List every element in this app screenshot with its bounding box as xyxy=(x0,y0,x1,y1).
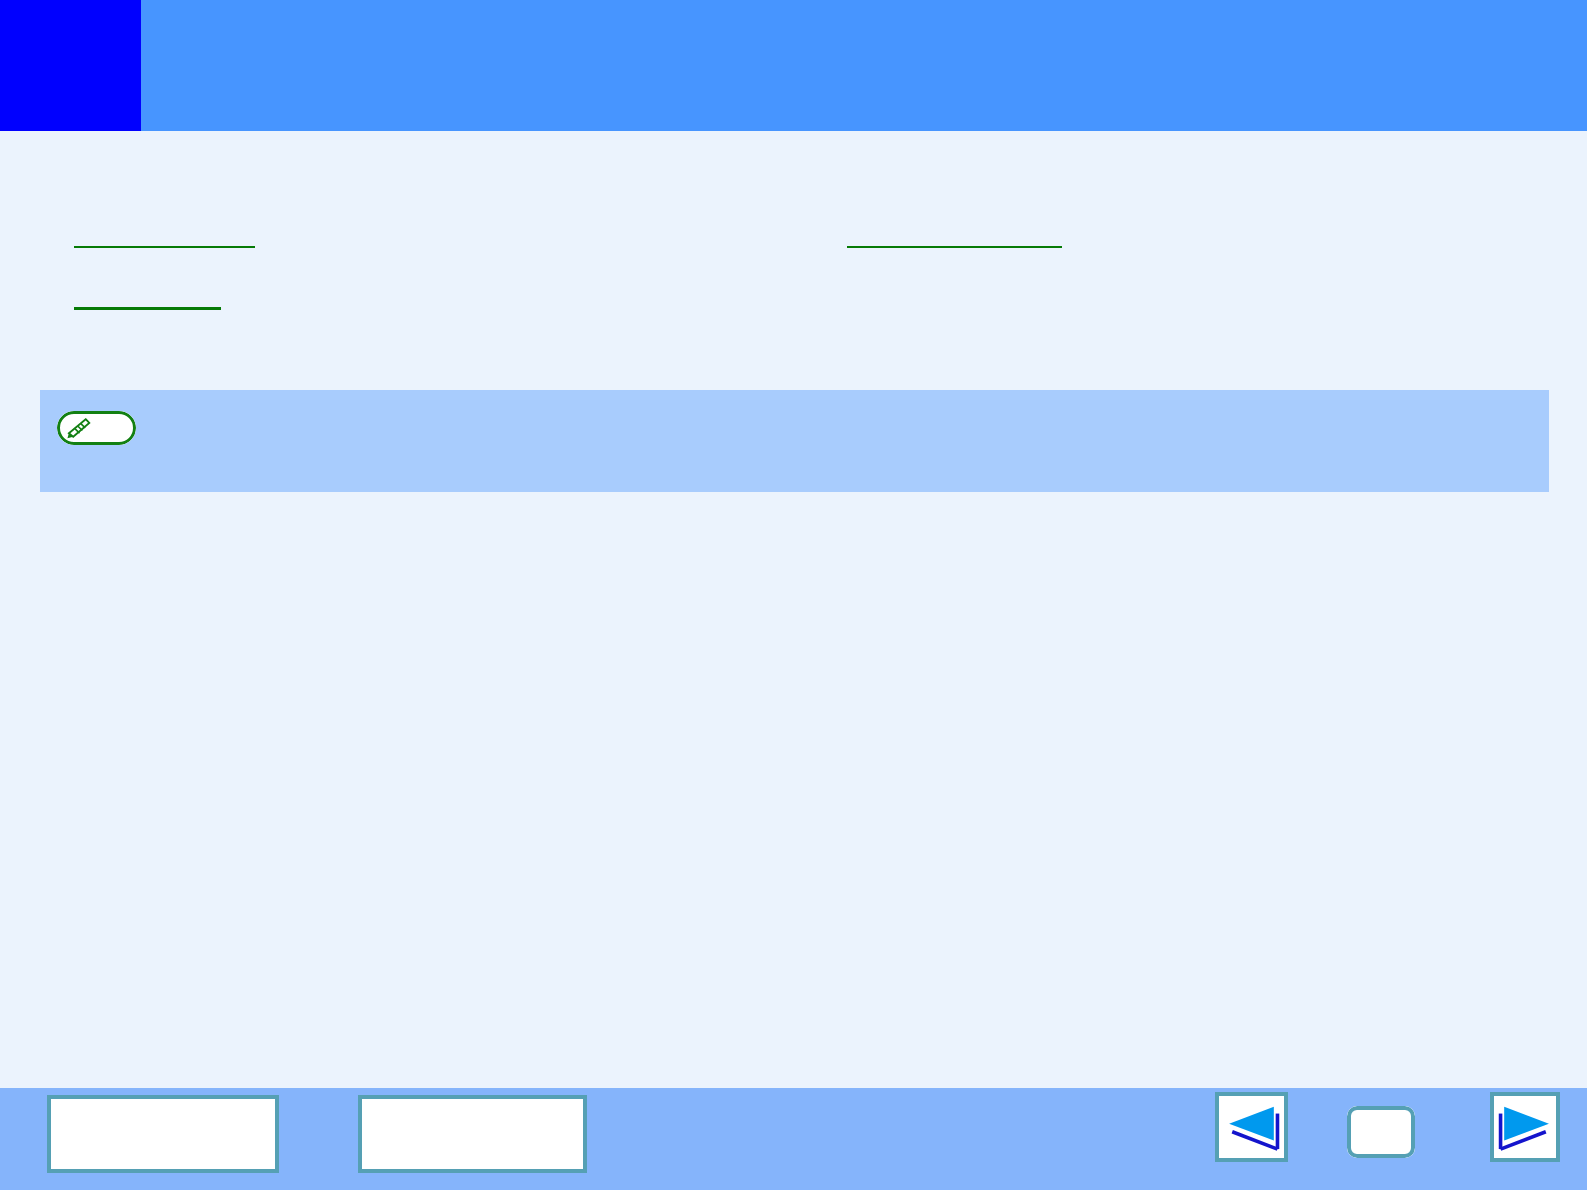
button[interactable]: Next page xyxy=(1490,1092,1560,1162)
other: Note xyxy=(57,411,136,445)
button[interactable] xyxy=(74,287,221,313)
button[interactable] xyxy=(74,225,255,251)
button[interactable]: Home xyxy=(1347,1106,1415,1158)
button[interactable]: Contents xyxy=(47,1095,279,1173)
button[interactable] xyxy=(847,225,1062,251)
button[interactable]: Previous page xyxy=(1215,1092,1288,1162)
button[interactable]: Index xyxy=(358,1095,587,1173)
